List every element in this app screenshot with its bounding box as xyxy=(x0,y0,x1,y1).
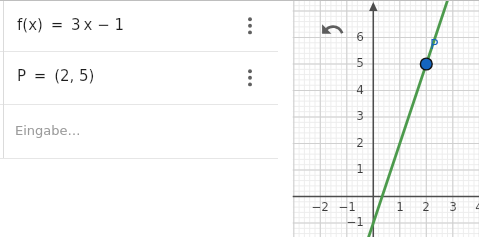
staticText: −1 xyxy=(331,200,363,214)
button[interactable]: P = (2, 5) xyxy=(0,52,292,105)
staticText: 4 xyxy=(332,83,364,97)
staticText: P = (2, 5) xyxy=(17,67,95,84)
staticText: 3 xyxy=(332,109,364,123)
staticText: 1 xyxy=(332,162,364,176)
staticText: 3 xyxy=(437,200,469,214)
staticText: −2 xyxy=(304,200,336,214)
staticText: 5 xyxy=(332,56,364,70)
staticText: P xyxy=(430,36,439,52)
staticText: 6 xyxy=(332,30,364,44)
staticText: 4 xyxy=(463,200,479,214)
button[interactable]: f(x) = 3 x − 1 xyxy=(0,1,292,52)
button[interactable]: Undo xyxy=(320,17,345,42)
staticText: 2 xyxy=(332,136,364,150)
staticText: f(x) = 3 x − 1 xyxy=(17,16,125,33)
staticText: Eingabe… xyxy=(15,123,81,138)
staticText: 1 xyxy=(384,200,416,214)
staticText: −1 xyxy=(332,215,364,229)
button[interactable]: Row menu xyxy=(240,17,260,37)
staticText: 2 xyxy=(410,200,442,214)
button[interactable]: Row menu xyxy=(240,69,260,89)
button[interactable]: Eingabe… xyxy=(0,105,292,159)
